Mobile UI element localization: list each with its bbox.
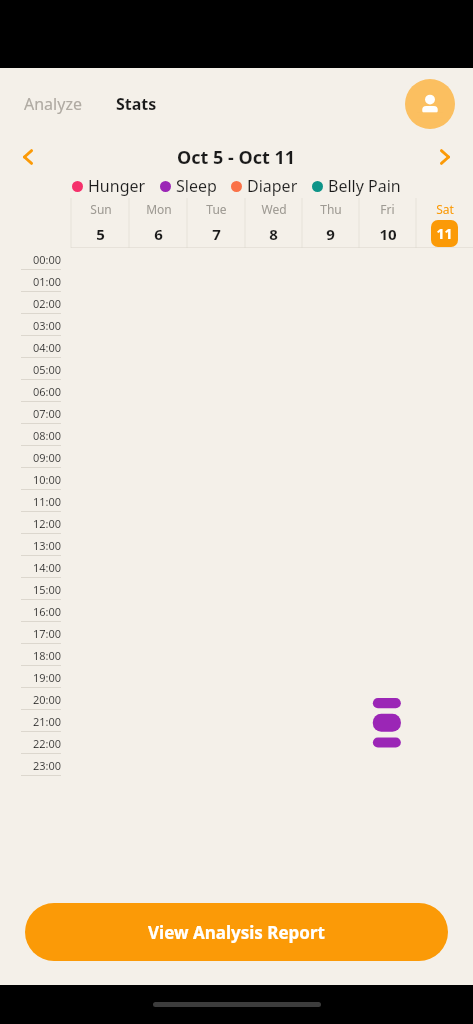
staticText: 5 — [96, 224, 105, 244]
staticText: 9 — [326, 224, 335, 244]
staticText: 05:00 — [21, 362, 61, 377]
button[interactable]: Fri — [359, 198, 416, 248]
staticText: 13:00 — [21, 538, 61, 553]
staticText: Diaper — [247, 175, 298, 197]
staticText: 07:00 — [21, 406, 61, 421]
staticText: 16:00 — [21, 604, 61, 619]
staticText: Wed — [261, 201, 287, 217]
button[interactable]: Thu — [302, 198, 359, 248]
staticText: 15:00 — [21, 582, 61, 597]
button[interactable]: Stats — [110, 87, 163, 121]
button[interactable]: Profile — [405, 79, 455, 129]
staticText: 14:00 — [21, 560, 61, 575]
staticText: 04:00 — [21, 340, 61, 355]
staticText: 11:00 — [21, 494, 61, 509]
staticText: 6 — [154, 224, 163, 244]
button[interactable]: Belly Pain — [312, 175, 401, 197]
staticText: Analyze — [24, 93, 82, 115]
staticText: Belly Pain — [328, 175, 401, 197]
button[interactable]: Sleep — [160, 175, 217, 197]
staticText: Mon — [146, 201, 172, 217]
button[interactable]: Sat — [416, 198, 473, 248]
staticText: Oct 5 - Oct 11 — [177, 145, 296, 170]
staticText: 10 — [379, 224, 397, 244]
staticText: 08:00 — [21, 428, 61, 443]
staticText: View Analysis Report — [148, 921, 325, 944]
staticText: 12:00 — [21, 516, 61, 531]
staticText: Tue — [206, 201, 227, 217]
staticText: 23:00 — [21, 758, 61, 773]
button[interactable]: Tue — [187, 198, 245, 248]
button[interactable]: View Analysis Report — [25, 903, 448, 961]
staticText: 11 — [436, 224, 453, 243]
staticText: Sun — [90, 201, 112, 217]
button[interactable]: Wed — [245, 198, 302, 248]
staticText: 17:00 — [21, 626, 61, 641]
button[interactable]: Previous week — [10, 140, 46, 174]
button[interactable]: Analyze — [18, 87, 88, 121]
staticText: Stats — [116, 93, 157, 115]
staticText: 01:00 — [21, 274, 61, 289]
button[interactable]: Next week — [427, 140, 463, 174]
staticText: 10:00 — [21, 472, 61, 487]
staticText: 20:00 — [21, 692, 61, 707]
staticText: 18:00 — [21, 648, 61, 663]
staticText: 03:00 — [21, 318, 61, 333]
button[interactable]: Sun — [71, 198, 129, 248]
staticText: Sleep — [176, 175, 217, 197]
staticText: 02:00 — [21, 296, 61, 311]
staticText: 19:00 — [21, 670, 61, 685]
staticText: 00:00 — [21, 252, 61, 267]
staticText: Thu — [320, 201, 342, 217]
staticText: Fri — [380, 201, 395, 217]
staticText: Sat — [436, 201, 454, 217]
staticText: 21:00 — [21, 714, 61, 729]
staticText: 7 — [212, 224, 221, 244]
staticText: 8 — [269, 224, 278, 244]
button[interactable]: Hunger — [72, 175, 146, 197]
staticText: 22:00 — [21, 736, 61, 751]
staticText: 06:00 — [21, 384, 61, 399]
button[interactable]: Diaper — [231, 175, 298, 197]
staticText: Hunger — [88, 175, 146, 197]
staticText: 09:00 — [21, 450, 61, 465]
button[interactable]: Mon — [129, 198, 187, 248]
